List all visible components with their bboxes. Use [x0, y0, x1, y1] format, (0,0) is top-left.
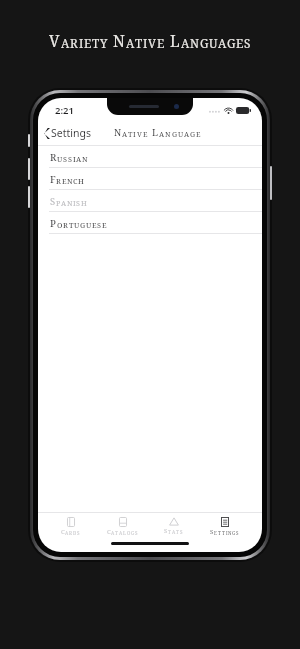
- staticText: C: [107, 528, 111, 536]
- staticText: N: [67, 176, 73, 186]
- button[interactable]: R: [38, 146, 262, 168]
- staticText: S: [210, 528, 214, 536]
- staticText: G: [227, 35, 236, 51]
- staticText: U: [74, 220, 80, 230]
- staticText: O: [127, 530, 131, 536]
- staticText: S: [164, 527, 168, 535]
- staticText: L: [123, 530, 127, 536]
- staticText: R: [50, 151, 57, 164]
- staticText: S: [68, 154, 73, 164]
- staticText: G: [80, 220, 86, 230]
- staticText: T: [168, 529, 172, 535]
- staticText: U: [86, 220, 92, 230]
- staticText: E: [214, 530, 218, 536]
- staticText: I: [133, 129, 137, 139]
- other: Settings: [221, 517, 229, 527]
- staticText: T: [218, 530, 222, 536]
- staticText: T: [69, 220, 74, 230]
- staticText: N: [165, 129, 172, 139]
- staticText: A: [61, 35, 70, 51]
- staticText: I: [143, 35, 148, 51]
- staticText: S: [236, 530, 239, 536]
- staticText: I: [226, 530, 228, 536]
- staticText: L: [170, 30, 181, 51]
- staticText: A: [181, 35, 190, 51]
- staticText: G: [200, 35, 209, 51]
- button[interactable]: Cards: [57, 513, 84, 539]
- staticText: L: [152, 126, 159, 139]
- staticText: R: [69, 530, 73, 536]
- staticText: P: [56, 198, 61, 208]
- staticText: A: [122, 129, 128, 139]
- staticText: A: [218, 35, 227, 51]
- staticText: H: [78, 176, 85, 186]
- staticText: Settings: [51, 126, 91, 140]
- staticText: G: [190, 129, 196, 139]
- staticText: U: [209, 35, 218, 51]
- button[interactable]: Catalogs: [103, 513, 142, 539]
- button[interactable]: F: [38, 168, 262, 190]
- staticText: S: [63, 154, 68, 164]
- staticText: N: [113, 30, 126, 51]
- staticText: E: [84, 35, 92, 51]
- staticText: F: [50, 173, 56, 186]
- staticText: S: [244, 35, 251, 51]
- staticText: A: [65, 530, 69, 536]
- staticText: A: [111, 530, 115, 536]
- staticText: S: [97, 220, 102, 230]
- staticText: G: [172, 129, 178, 139]
- staticText: S: [50, 195, 56, 208]
- staticText: R: [70, 35, 79, 51]
- staticText: D: [73, 530, 77, 536]
- staticText: T: [135, 35, 143, 51]
- staticText: T: [128, 129, 133, 139]
- staticText: V: [137, 129, 143, 139]
- staticText: H: [81, 198, 88, 208]
- staticText: T: [115, 530, 119, 536]
- staticText: 2:21: [55, 104, 74, 117]
- staticText: E: [236, 35, 244, 51]
- staticText: N: [228, 530, 232, 536]
- staticText: P: [50, 217, 57, 230]
- staticText: E: [62, 176, 67, 186]
- staticText: C: [61, 528, 65, 536]
- staticText: E: [143, 129, 149, 139]
- staticText: Y: [100, 35, 108, 51]
- staticText: A: [61, 198, 67, 208]
- staticText: N: [67, 198, 73, 208]
- staticText: N: [114, 126, 122, 139]
- staticText: A: [76, 154, 82, 164]
- staticText: V: [148, 35, 157, 51]
- button[interactable]: Stats: [160, 513, 187, 539]
- staticText: O: [57, 220, 63, 230]
- staticText: T: [176, 529, 180, 535]
- staticText: R: [56, 176, 62, 186]
- staticText: A: [172, 529, 176, 535]
- staticText: G: [131, 530, 135, 536]
- staticText: S: [76, 198, 81, 208]
- staticText: T: [92, 35, 100, 51]
- staticText: S: [135, 530, 138, 536]
- staticText: I: [79, 35, 84, 51]
- button[interactable]: Settings: [38, 123, 97, 143]
- staticText: G: [232, 530, 236, 536]
- staticText: N: [190, 35, 200, 51]
- staticText: S: [77, 530, 80, 536]
- staticText: A: [119, 530, 123, 536]
- button[interactable]: Settings: [206, 513, 243, 539]
- staticText: E: [92, 220, 97, 230]
- staticText: A: [126, 35, 135, 51]
- staticText: E: [196, 129, 202, 139]
- staticText: E: [157, 35, 165, 51]
- staticText: R: [63, 220, 69, 230]
- other: Stats: [169, 517, 179, 526]
- staticText: N: [82, 154, 88, 164]
- staticText: E: [102, 220, 107, 230]
- button[interactable]: P: [38, 212, 262, 234]
- staticText: I: [73, 198, 76, 208]
- button[interactable]: S: [38, 190, 262, 212]
- staticText: U: [178, 129, 184, 139]
- staticText: I: [73, 154, 76, 164]
- other: Catalogs: [119, 517, 127, 527]
- staticText: S: [180, 529, 183, 535]
